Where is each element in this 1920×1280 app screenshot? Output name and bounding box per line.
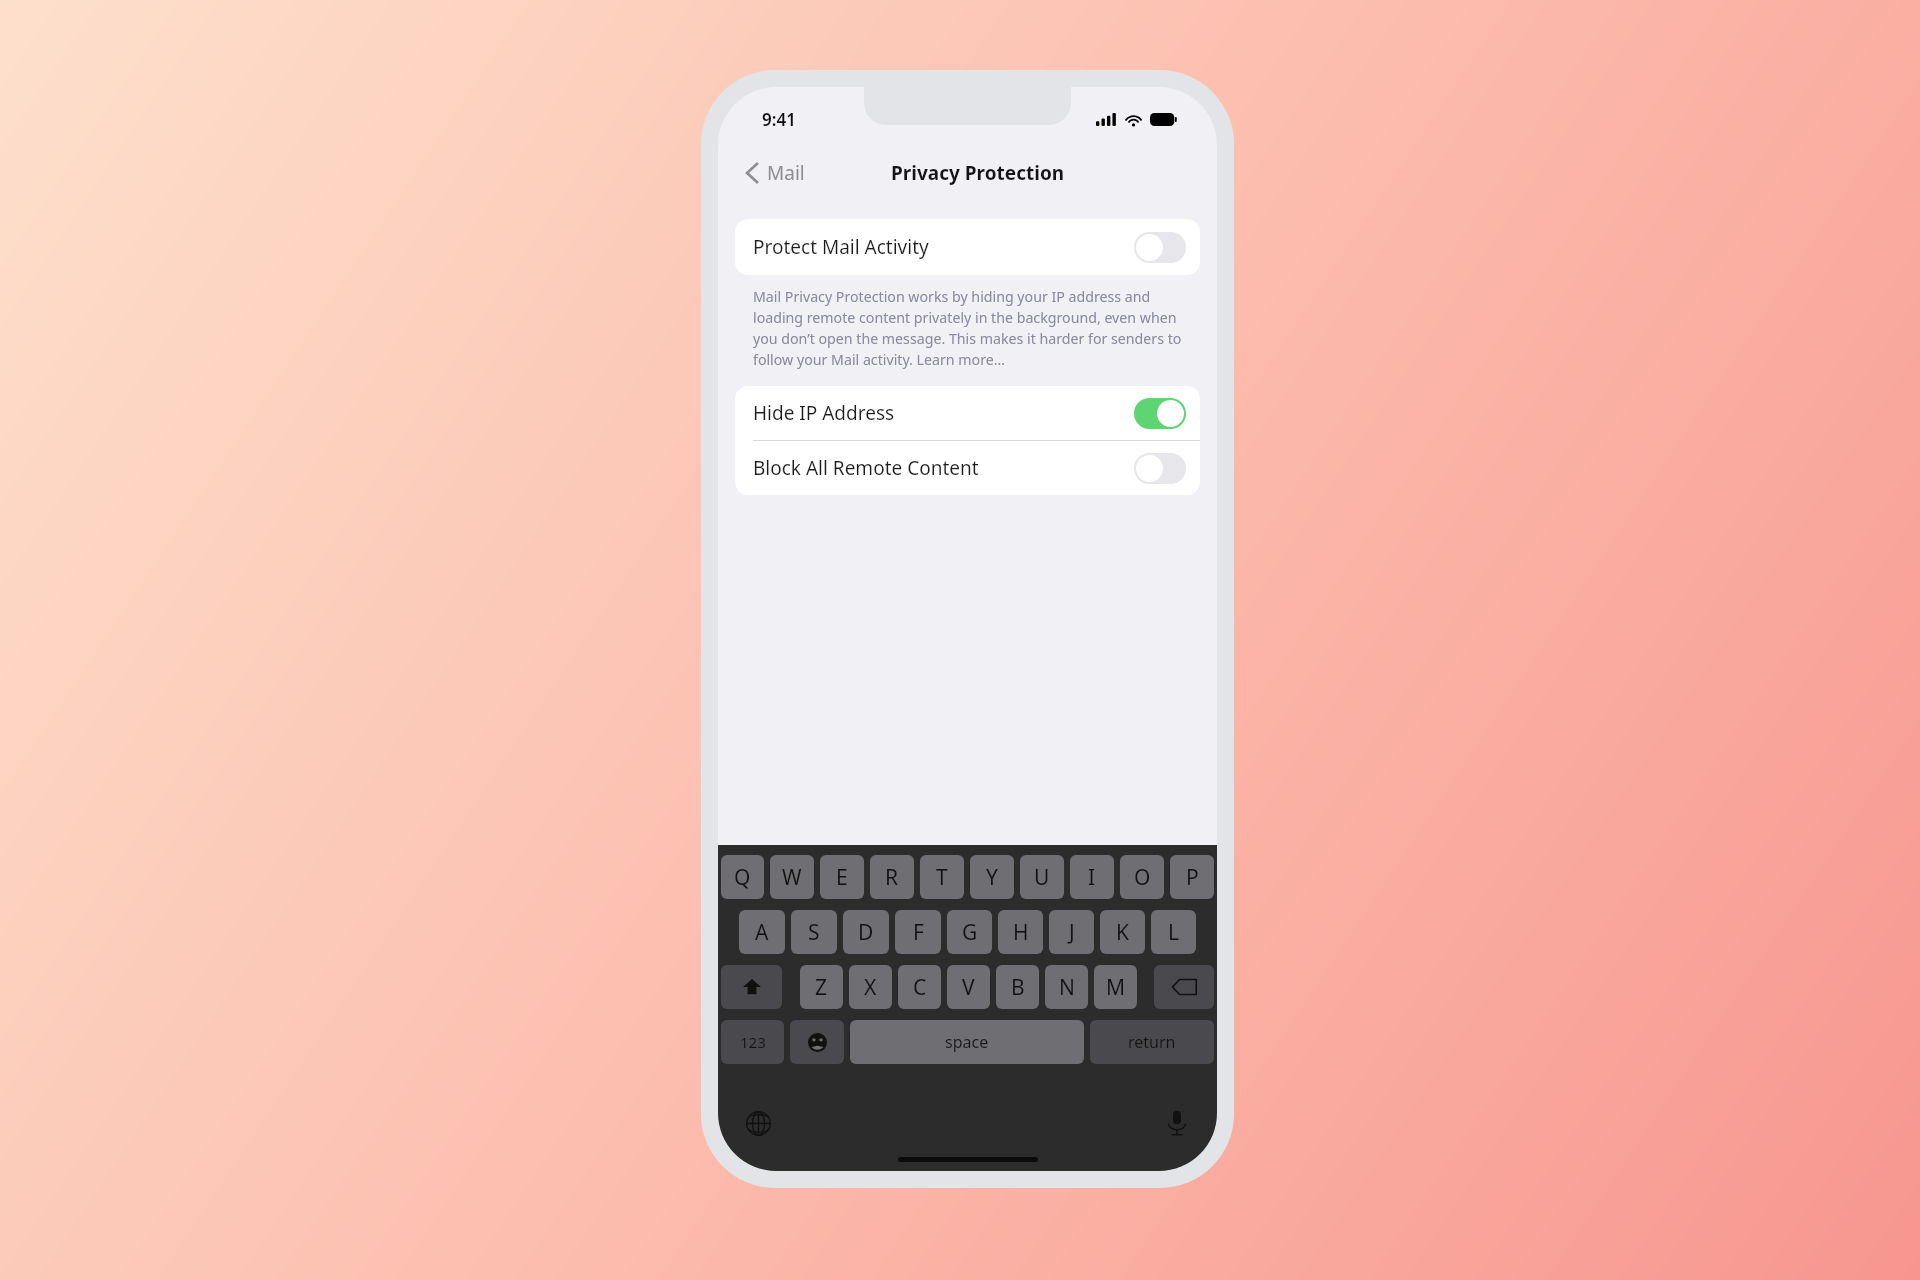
button[interactable]: Dictation bbox=[1155, 1101, 1199, 1145]
staticText: K bbox=[1116, 918, 1129, 947]
button[interactable]: V bbox=[947, 965, 990, 1009]
button[interactable]: Emoji bbox=[790, 1020, 844, 1064]
staticText: A bbox=[755, 918, 769, 947]
staticText: T bbox=[936, 863, 948, 892]
button[interactable]: N bbox=[1045, 965, 1088, 1009]
staticText: Mail Privacy Protection works by hiding … bbox=[753, 287, 1187, 370]
button[interactable]: Backspace bbox=[1154, 965, 1214, 1009]
staticText: N bbox=[1059, 973, 1075, 1002]
staticText: Block All Remote Content bbox=[753, 455, 979, 481]
button[interactable]: Shift bbox=[721, 965, 782, 1009]
button[interactable]: B bbox=[996, 965, 1039, 1009]
button[interactable]: Off bbox=[1134, 453, 1186, 484]
button[interactable]: Z bbox=[800, 965, 843, 1009]
staticText: P bbox=[1186, 863, 1199, 892]
button[interactable]: space bbox=[850, 1020, 1084, 1064]
staticText: I bbox=[1088, 863, 1096, 892]
staticText: 123 bbox=[740, 1032, 766, 1052]
button[interactable]: G bbox=[947, 910, 992, 954]
button[interactable]: O bbox=[1120, 855, 1164, 899]
staticText: 9:41 bbox=[762, 108, 796, 131]
button[interactable]: X bbox=[849, 965, 892, 1009]
staticText: Hide IP Address bbox=[753, 400, 895, 426]
staticText: Privacy Protection bbox=[891, 160, 1065, 186]
staticText: M bbox=[1106, 973, 1126, 1002]
staticText: Q bbox=[734, 863, 751, 892]
staticText: U bbox=[1034, 863, 1050, 892]
staticText: S bbox=[808, 918, 820, 947]
button[interactable]: 123 bbox=[721, 1020, 784, 1064]
button[interactable]: Block All Remote Content bbox=[735, 441, 1200, 495]
staticText: L bbox=[1168, 918, 1180, 947]
button[interactable]: Hide IP Address bbox=[735, 386, 1200, 440]
button[interactable]: T bbox=[920, 855, 964, 899]
button[interactable]: U bbox=[1020, 855, 1064, 899]
button[interactable]: A bbox=[739, 910, 785, 954]
button[interactable]: D bbox=[843, 910, 889, 954]
staticText: E bbox=[836, 863, 848, 892]
staticText: O bbox=[1134, 863, 1151, 892]
button[interactable]: On bbox=[1134, 398, 1186, 429]
button[interactable]: I bbox=[1070, 855, 1114, 899]
button[interactable]: Mail bbox=[740, 154, 811, 192]
button[interactable]: S bbox=[791, 910, 837, 954]
button[interactable]: H bbox=[998, 910, 1043, 954]
staticText: return bbox=[1128, 1031, 1176, 1053]
staticText: Y bbox=[986, 863, 998, 892]
button[interactable]: K bbox=[1100, 910, 1145, 954]
staticText: J bbox=[1069, 918, 1075, 947]
button[interactable]: C bbox=[898, 965, 941, 1009]
button[interactable]: Y bbox=[970, 855, 1014, 899]
button[interactable]: F bbox=[895, 910, 941, 954]
button[interactable]: Off bbox=[1134, 232, 1186, 263]
button[interactable]: Protect Mail Activity bbox=[735, 219, 1200, 275]
button[interactable]: J bbox=[1049, 910, 1094, 954]
staticText: B bbox=[1011, 973, 1025, 1002]
button[interactable]: R bbox=[870, 855, 914, 899]
button[interactable]: E bbox=[820, 855, 864, 899]
button[interactable]: W bbox=[770, 855, 814, 899]
button[interactable]: return bbox=[1090, 1020, 1214, 1064]
staticText: X bbox=[864, 973, 877, 1002]
staticText: D bbox=[858, 918, 874, 947]
staticText: Protect Mail Activity bbox=[753, 234, 929, 260]
staticText: W bbox=[782, 863, 802, 892]
button[interactable]: Q bbox=[721, 855, 764, 899]
button[interactable]: Change keyboard bbox=[736, 1101, 780, 1145]
staticText: V bbox=[962, 973, 975, 1002]
button[interactable]: M bbox=[1094, 965, 1137, 1009]
staticText: C bbox=[913, 973, 927, 1002]
staticText: G bbox=[962, 918, 978, 947]
staticText: space bbox=[945, 1031, 989, 1053]
staticText: F bbox=[913, 918, 924, 947]
staticText: R bbox=[885, 863, 899, 892]
staticText: Z bbox=[815, 973, 828, 1002]
staticText: H bbox=[1013, 918, 1029, 947]
button[interactable]: L bbox=[1151, 910, 1196, 954]
staticText: Mail bbox=[767, 160, 805, 186]
button[interactable]: P bbox=[1170, 855, 1214, 899]
